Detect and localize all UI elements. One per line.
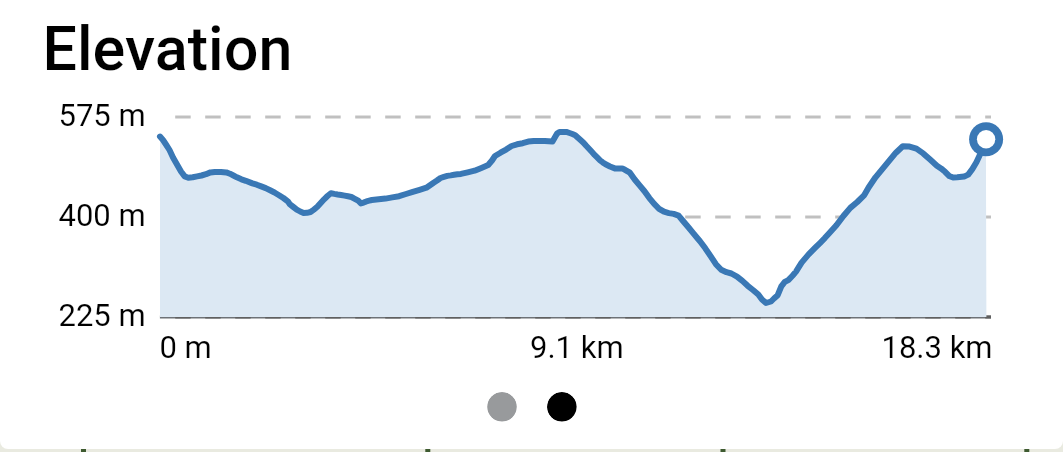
button[interactable]: Page 1 <box>487 392 517 422</box>
button[interactable]: Activity <box>0 440 265 452</box>
button[interactable]: Page 2, selected <box>547 392 577 422</box>
button[interactable]: Routes <box>265 440 531 452</box>
button[interactable]: Profile <box>797 440 1063 452</box>
button[interactable] <box>0 0 1063 449</box>
button[interactable]: Explore <box>531 440 797 452</box>
